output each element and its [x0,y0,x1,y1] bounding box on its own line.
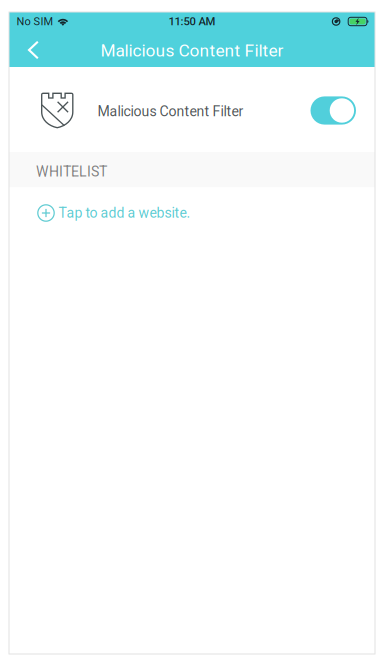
staticText: Malicious Content Filter [97,103,243,120]
button[interactable]: Malicious Content Filter [9,67,375,152]
button[interactable]: Back [9,31,55,67]
staticText: Malicious Content Filter [100,40,283,61]
staticText: 11:50 AM [168,15,215,28]
staticText: Tap to add a website. [58,205,190,221]
staticText: No SIM [16,15,53,28]
button[interactable]: Tap to add a website. [9,187,375,238]
staticText: WHITELIST [36,163,107,180]
